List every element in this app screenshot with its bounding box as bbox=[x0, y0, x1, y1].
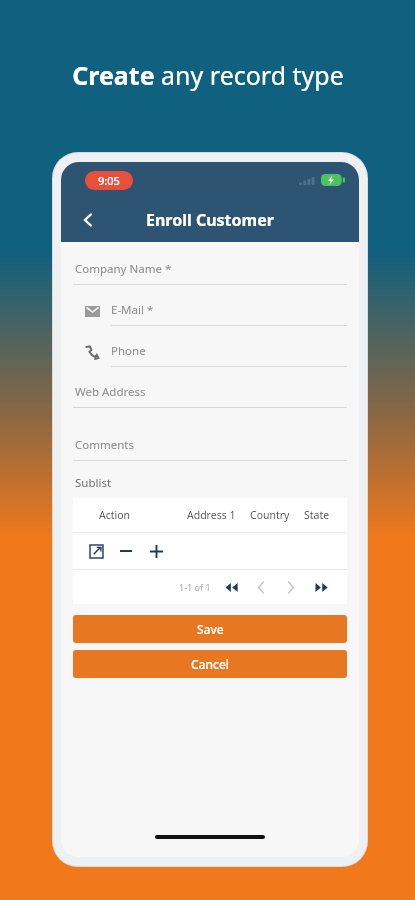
button[interactable]: Add row bbox=[141, 536, 171, 566]
button[interactable]: Open row bbox=[81, 536, 111, 566]
staticText: Country bbox=[250, 508, 290, 522]
staticText: 9:05 bbox=[98, 173, 120, 188]
button[interactable]: Next page bbox=[279, 575, 303, 599]
button[interactable]: Back bbox=[69, 201, 107, 239]
staticText: Company Name * bbox=[75, 261, 172, 277]
button[interactable]: Comments bbox=[73, 430, 347, 471]
button[interactable]: Save bbox=[73, 615, 347, 643]
staticText: Save bbox=[197, 621, 224, 637]
button[interactable]: E-Mail * bbox=[73, 295, 347, 336]
staticText: Create any record type bbox=[72, 58, 344, 92]
staticText: Enroll Customer bbox=[146, 209, 274, 231]
staticText: State bbox=[304, 508, 330, 522]
button[interactable]: Cancel bbox=[73, 650, 347, 678]
button[interactable]: Company Name * bbox=[73, 254, 347, 295]
staticText: E-Mail * bbox=[111, 302, 154, 318]
button[interactable]: Phone bbox=[73, 336, 347, 377]
button[interactable]: Previous page bbox=[249, 575, 273, 599]
staticText: 1-1 of 1 bbox=[179, 581, 211, 593]
staticText: Phone bbox=[111, 343, 146, 359]
button[interactable]: Web Address bbox=[73, 377, 347, 418]
staticText: Action bbox=[99, 508, 131, 522]
staticText: Comments bbox=[75, 437, 134, 453]
staticText: Cancel bbox=[191, 656, 230, 672]
button[interactable]: Remove row bbox=[111, 536, 141, 566]
staticText: Sublist bbox=[75, 475, 112, 491]
staticText: Web Address bbox=[75, 384, 146, 400]
staticText: Address 1 bbox=[187, 508, 236, 522]
button[interactable]: Last page bbox=[309, 575, 333, 599]
button[interactable]: First page bbox=[219, 575, 243, 599]
